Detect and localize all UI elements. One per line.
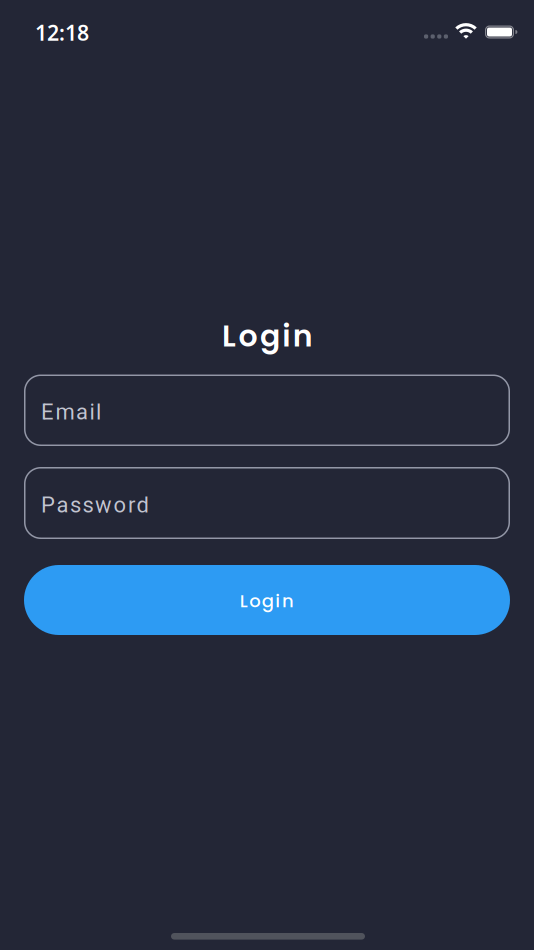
staticText: o	[113, 492, 126, 518]
staticText: E	[41, 399, 54, 425]
staticText: w	[95, 492, 112, 518]
staticText: l	[96, 399, 101, 425]
staticText: m	[55, 399, 74, 425]
staticText: 12:18	[35, 18, 89, 47]
staticText: s	[82, 492, 93, 518]
button[interactable]: L	[24, 565, 510, 635]
staticText: s	[70, 492, 81, 518]
staticText: a	[56, 492, 68, 518]
staticText: a	[76, 399, 88, 425]
staticText: i	[89, 399, 94, 425]
staticText: n	[293, 315, 313, 357]
staticText: n	[282, 588, 294, 614]
staticText: d	[136, 492, 148, 518]
staticText: g	[260, 315, 280, 357]
staticText: g	[262, 588, 274, 614]
button[interactable]: E	[24, 374, 510, 446]
staticText: P	[41, 492, 55, 518]
button[interactable]: P	[24, 467, 510, 539]
staticText: L	[240, 588, 248, 614]
staticText: i	[275, 588, 280, 614]
staticText: r	[128, 492, 135, 518]
staticText: L	[222, 315, 236, 357]
staticText: o	[238, 315, 257, 357]
staticText: o	[249, 588, 260, 614]
staticText: i	[282, 315, 290, 357]
